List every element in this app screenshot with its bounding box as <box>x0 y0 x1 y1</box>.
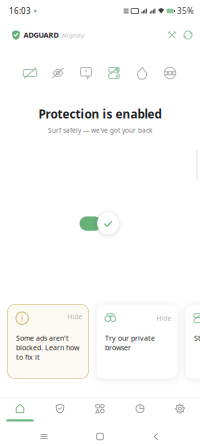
button[interactable]: Settings <box>160 398 200 426</box>
button[interactable]: Home <box>0 398 40 426</box>
button[interactable]: Protection <box>40 398 80 426</box>
button[interactable]: Protection enabled <box>80 212 122 236</box>
staticText: Some ads aren't blocked. Learn how to fi… <box>16 333 79 362</box>
button[interactable]: Apps <box>80 398 120 426</box>
button[interactable]: Stealth mode <box>156 64 184 82</box>
staticText: 35% <box>177 6 194 16</box>
button[interactable]: i <box>7 304 88 378</box>
staticText: Try our private browser <box>105 333 155 352</box>
staticText: Protection is enabled <box>38 106 161 122</box>
staticText: Nightly <box>62 31 84 39</box>
button[interactable]: Back <box>144 427 168 446</box>
staticText: Stay protected <box>194 333 200 343</box>
button[interactable]: Tracking protection <box>44 64 72 82</box>
staticText: 16:03 <box>9 6 31 16</box>
button[interactable]: Refresh <box>180 27 196 43</box>
button[interactable]: Statistics <box>120 398 160 426</box>
button[interactable]: Stay protected <box>185 304 200 378</box>
staticText: Hide <box>156 314 171 322</box>
staticText: i <box>21 313 23 324</box>
button[interactable]: DNS protection <box>100 64 128 82</box>
staticText: Hide <box>67 312 82 321</box>
button[interactable]: Ad blocking <box>16 64 44 82</box>
staticText: ADGUARD <box>23 30 58 40</box>
button[interactable]: Recent apps <box>32 427 56 446</box>
button[interactable]: Firewall <box>128 64 156 82</box>
button[interactable]: Annoyances <box>72 64 100 82</box>
button[interactable]: Hide <box>96 304 177 378</box>
staticText: Surf safely — we've got your back <box>48 126 152 135</box>
button[interactable]: Tools <box>164 27 180 43</box>
button[interactable]: Home <box>88 427 112 446</box>
